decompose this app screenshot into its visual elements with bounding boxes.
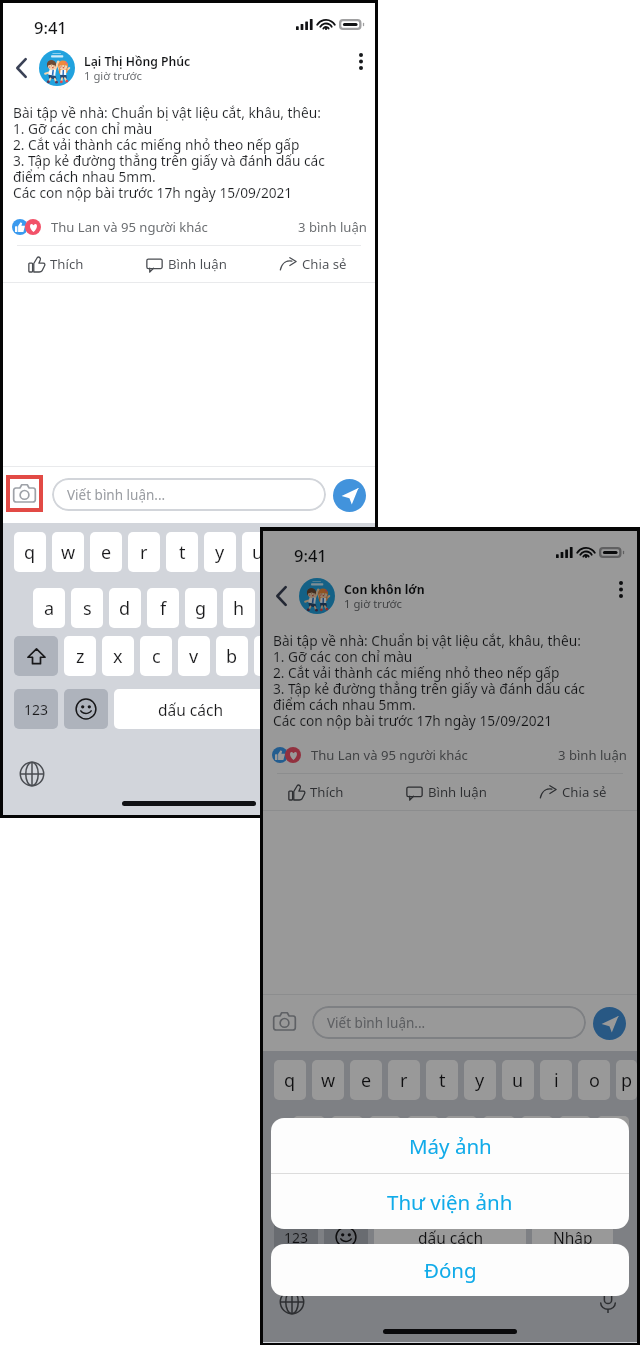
button[interactable]: m — [552, 1164, 584, 1204]
button[interactable]: s — [71, 588, 103, 628]
button[interactable]: s — [331, 1116, 363, 1156]
button[interactable]: t — [166, 532, 198, 572]
button[interactable]: c — [140, 636, 172, 676]
button[interactable]: Send — [593, 1007, 626, 1040]
button[interactable]: Shift — [274, 1164, 318, 1204]
button[interactable]: b — [216, 636, 248, 676]
staticText: Thu Lan và 95 người khác — [311, 746, 468, 764]
button[interactable]: dấu cách — [374, 1217, 526, 1257]
button[interactable]: Shift — [14, 636, 58, 676]
button[interactable]: Switch language — [19, 761, 45, 787]
button[interactable]: d — [109, 588, 141, 628]
button[interactable]: e — [350, 1060, 382, 1100]
button[interactable]: k — [299, 588, 331, 628]
button[interactable]: w — [52, 532, 84, 572]
staticText: Thu Lan và 95 người khác — [51, 218, 208, 236]
button[interactable]: z — [64, 636, 96, 676]
button[interactable]: r — [388, 1060, 420, 1100]
button[interactable]: Đóng — [271, 1244, 629, 1296]
button[interactable]: d — [369, 1116, 401, 1156]
button[interactable]: 123 — [274, 1217, 318, 1257]
button[interactable]: Emoji — [64, 689, 108, 729]
staticText: 9:41 — [294, 544, 327, 566]
staticText: dấu cách — [418, 1227, 483, 1248]
button[interactable]: n — [254, 636, 286, 676]
button[interactable]: f — [407, 1116, 439, 1156]
button[interactable]: Thích — [288, 774, 356, 810]
button[interactable]: q — [14, 532, 46, 572]
button[interactable]: y — [204, 532, 236, 572]
button[interactable]: k — [559, 1116, 591, 1156]
button[interactable]: l — [337, 588, 369, 628]
button[interactable]: c — [400, 1164, 432, 1204]
button[interactable]: Thích — [28, 246, 96, 282]
button[interactable]: x — [362, 1164, 394, 1204]
button[interactable]: v — [178, 636, 210, 676]
button[interactable]: h — [483, 1116, 515, 1156]
button[interactable]: More options — [351, 50, 371, 72]
button[interactable]: Camera — [6, 475, 43, 512]
button[interactable]: l — [597, 1116, 629, 1156]
button[interactable]: q — [274, 1060, 306, 1100]
button[interactable]: x — [102, 636, 134, 676]
button[interactable]: w — [312, 1060, 344, 1100]
button[interactable]: Chia sẻ — [540, 774, 622, 810]
button[interactable]: g — [185, 588, 217, 628]
button[interactable]: Back — [8, 53, 34, 83]
staticText: m — [560, 1172, 577, 1197]
button[interactable]: u — [242, 532, 274, 572]
staticText: 9:41 — [34, 16, 67, 38]
button[interactable]: e — [90, 532, 122, 572]
button[interactable]: Switch language — [279, 1289, 305, 1315]
button[interactable]: i — [280, 532, 312, 572]
button[interactable]: v — [438, 1164, 470, 1204]
button[interactable]: Send — [333, 479, 366, 512]
button[interactable]: Chia sẻ — [280, 246, 362, 282]
button[interactable]: Thư viện ảnh — [271, 1174, 629, 1229]
button[interactable]: dấu cách — [114, 689, 266, 729]
button[interactable]: y — [464, 1060, 496, 1100]
button[interactable]: h — [223, 588, 255, 628]
button[interactable]: j — [521, 1116, 553, 1156]
button[interactable]: Back — [268, 581, 294, 611]
staticText: Thích — [50, 255, 84, 273]
button[interactable]: o — [578, 1060, 610, 1100]
button[interactable]: 123 — [14, 689, 58, 729]
button[interactable]: Máy ảnh — [271, 1118, 629, 1173]
button[interactable]: Viết bình luận... — [312, 1006, 586, 1039]
button[interactable]: More options — [611, 578, 631, 600]
button[interactable]: m — [292, 636, 324, 676]
button[interactable]: j — [261, 588, 293, 628]
button[interactable]: Bình luận — [406, 774, 501, 810]
button[interactable]: Emoji — [324, 1217, 368, 1257]
staticText: u — [252, 540, 264, 565]
button[interactable]: a — [293, 1116, 325, 1156]
button[interactable]: Nhập — [532, 1217, 613, 1257]
button[interactable]: g — [445, 1116, 477, 1156]
button[interactable]: z — [324, 1164, 356, 1204]
button[interactable]: n — [514, 1164, 546, 1204]
staticText: Nhập — [553, 1227, 593, 1248]
button[interactable]: b — [476, 1164, 508, 1204]
button[interactable]: p — [616, 1060, 637, 1100]
button[interactable]: Microphone — [595, 1289, 621, 1315]
button[interactable]: u — [502, 1060, 534, 1100]
button[interactable]: t — [426, 1060, 458, 1100]
button[interactable]: i — [540, 1060, 572, 1100]
staticText: q — [24, 540, 36, 565]
button[interactable]: Bình luận — [146, 246, 241, 282]
button[interactable]: f — [147, 588, 179, 628]
button[interactable]: Camera — [266, 1003, 303, 1040]
button[interactable]: a — [33, 588, 65, 628]
staticText: Nhập — [293, 699, 333, 720]
staticText: w — [321, 1068, 336, 1093]
button[interactable]: o — [318, 532, 350, 572]
button[interactable]: Viết bình luận... — [52, 478, 326, 511]
button[interactable]: Nhập — [272, 689, 353, 729]
staticText: Viết bình luận... — [327, 1014, 426, 1032]
button[interactable]: r — [128, 532, 160, 572]
